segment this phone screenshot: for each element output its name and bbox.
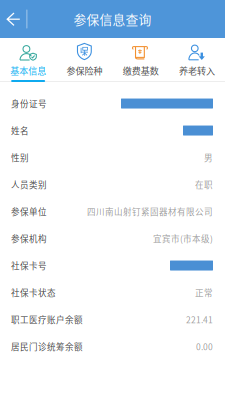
staticText: 社保卡号 (11, 259, 47, 272)
staticText: 男 (204, 151, 213, 164)
staticText: 职工医疗账户余额 (11, 313, 83, 326)
staticText: 在职 (195, 178, 213, 191)
button[interactable]: 参保险种 (56, 38, 112, 82)
staticText: 姓名 (11, 124, 29, 137)
staticText: 身份证号 (11, 97, 47, 110)
staticText: 0.00 (196, 340, 213, 353)
staticText: 人员类别 (11, 178, 47, 191)
staticText: 性别 (11, 151, 29, 164)
staticText: 缴费基数 (123, 64, 159, 77)
button[interactable]: 缴费基数 (112, 38, 169, 82)
staticText: 221.41 (186, 313, 213, 326)
staticText: 社保卡状态 (11, 286, 56, 299)
staticText: 居民门诊统筹余额 (11, 340, 83, 353)
staticText: 正常 (195, 286, 213, 299)
button[interactable]: 养老转入 (169, 38, 225, 82)
staticText: 宜宾市(市本级) (153, 232, 213, 245)
button[interactable]: Back (0, 0, 26, 38)
staticText: 参保信息查询 (73, 10, 151, 28)
staticText: 养老转入 (179, 64, 215, 77)
staticText: 四川南山射钉紧固器材有限公司 (87, 205, 213, 218)
button[interactable]: 基本信息 (0, 38, 56, 82)
staticText: 参保单位 (11, 205, 47, 218)
staticText: 参保机构 (11, 232, 47, 245)
staticText: 基本信息 (10, 64, 46, 77)
staticText: 参保险种 (66, 64, 102, 77)
